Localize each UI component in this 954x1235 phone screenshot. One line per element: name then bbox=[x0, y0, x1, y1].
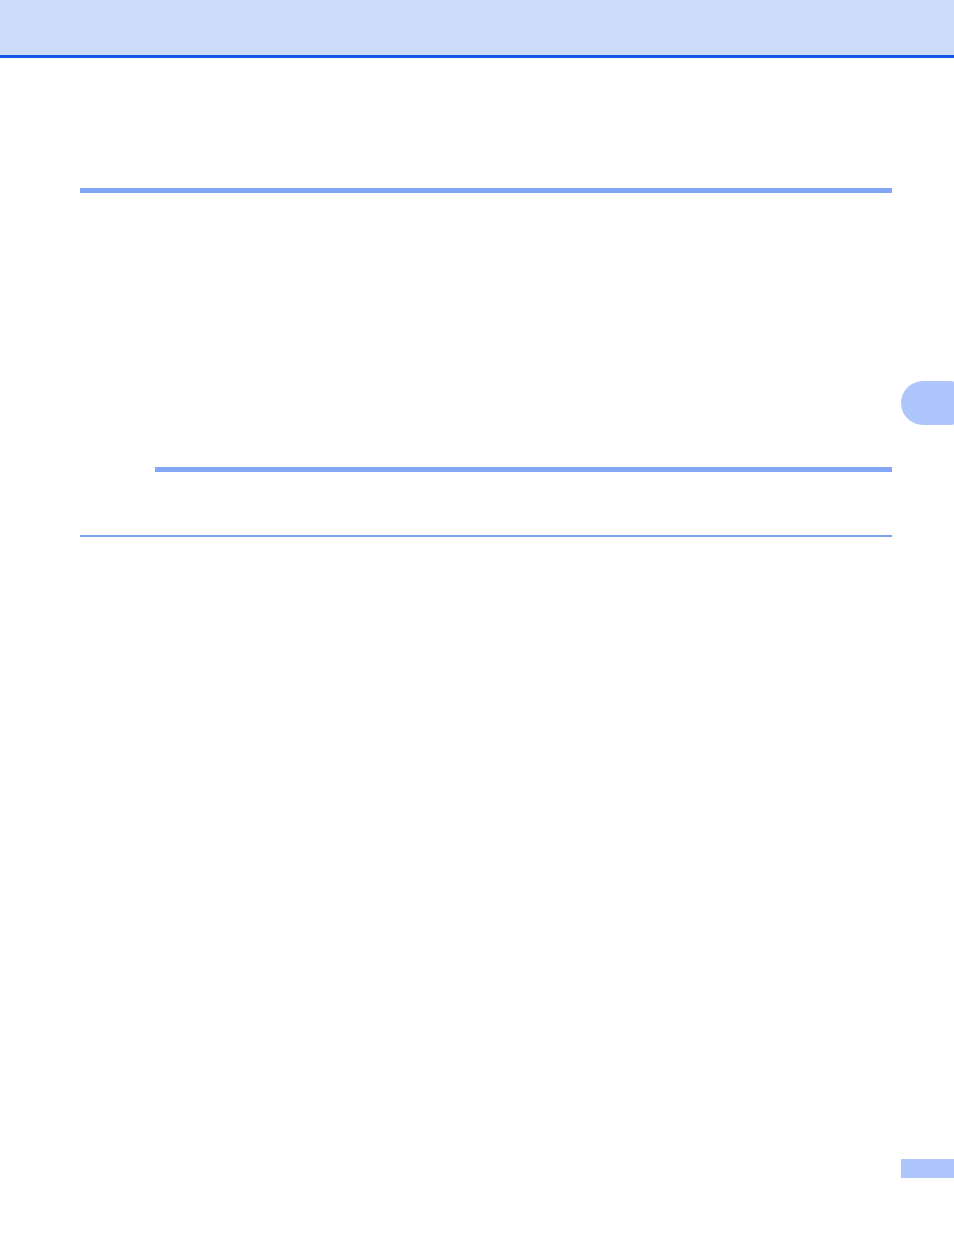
button[interactable]: Section index tab bbox=[901, 381, 954, 425]
